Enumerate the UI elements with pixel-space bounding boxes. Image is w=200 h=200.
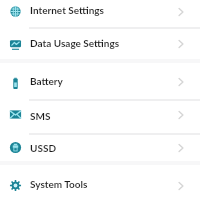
other: Open Data Usage Settings	[176, 39, 186, 49]
staticText: Data Usage Settings	[30, 37, 120, 49]
staticText: Battery	[30, 75, 63, 87]
other: Open SMS	[176, 110, 186, 120]
button[interactable]	[0, 62, 200, 99]
button[interactable]	[0, 0, 200, 27]
button[interactable]	[0, 134, 200, 163]
button[interactable]	[0, 100, 200, 133]
staticText: USSD	[30, 142, 57, 154]
button[interactable]	[0, 164, 200, 200]
staticText: Internet Settings	[30, 4, 105, 16]
button[interactable]	[0, 28, 200, 61]
other: Open USSD	[176, 143, 186, 153]
other: Open System Tools	[176, 181, 186, 191]
staticText: System Tools	[30, 178, 88, 190]
other: Open Internet Settings	[176, 7, 186, 17]
staticText: SMS	[30, 110, 51, 122]
other: Open Battery	[176, 77, 186, 87]
